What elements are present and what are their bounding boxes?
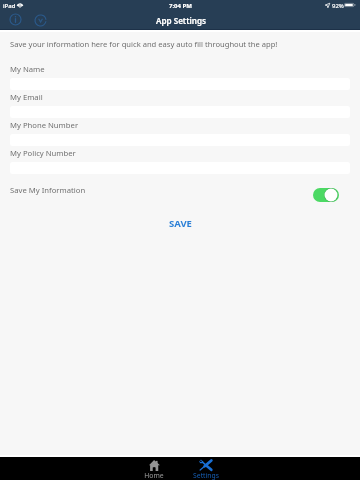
button[interactable]: Info: [7, 11, 23, 27]
staticText: My Name: [10, 64, 45, 74]
staticText: 92%: [332, 2, 344, 10]
staticText: iPad: [3, 2, 16, 10]
staticText: App Settings: [156, 15, 206, 26]
staticText: Settings: [193, 471, 219, 480]
button[interactable]: Settings: [180, 457, 232, 480]
staticText: SAVE: [169, 217, 192, 230]
button[interactable]: Save My Information: [312, 187, 339, 202]
staticText: 7:04 PM: [169, 2, 192, 10]
staticText: My Phone Number: [10, 120, 79, 130]
staticText: Save My Information: [10, 185, 86, 195]
button[interactable]: SAVE: [153, 213, 208, 234]
staticText: Home: [144, 471, 164, 480]
staticText: Save your information here for quick and…: [10, 39, 278, 49]
button[interactable]: Refresh: [32, 12, 48, 28]
staticText: My Policy Number: [10, 148, 76, 158]
button[interactable]: Home: [128, 457, 180, 480]
staticText: My Email: [10, 92, 43, 102]
